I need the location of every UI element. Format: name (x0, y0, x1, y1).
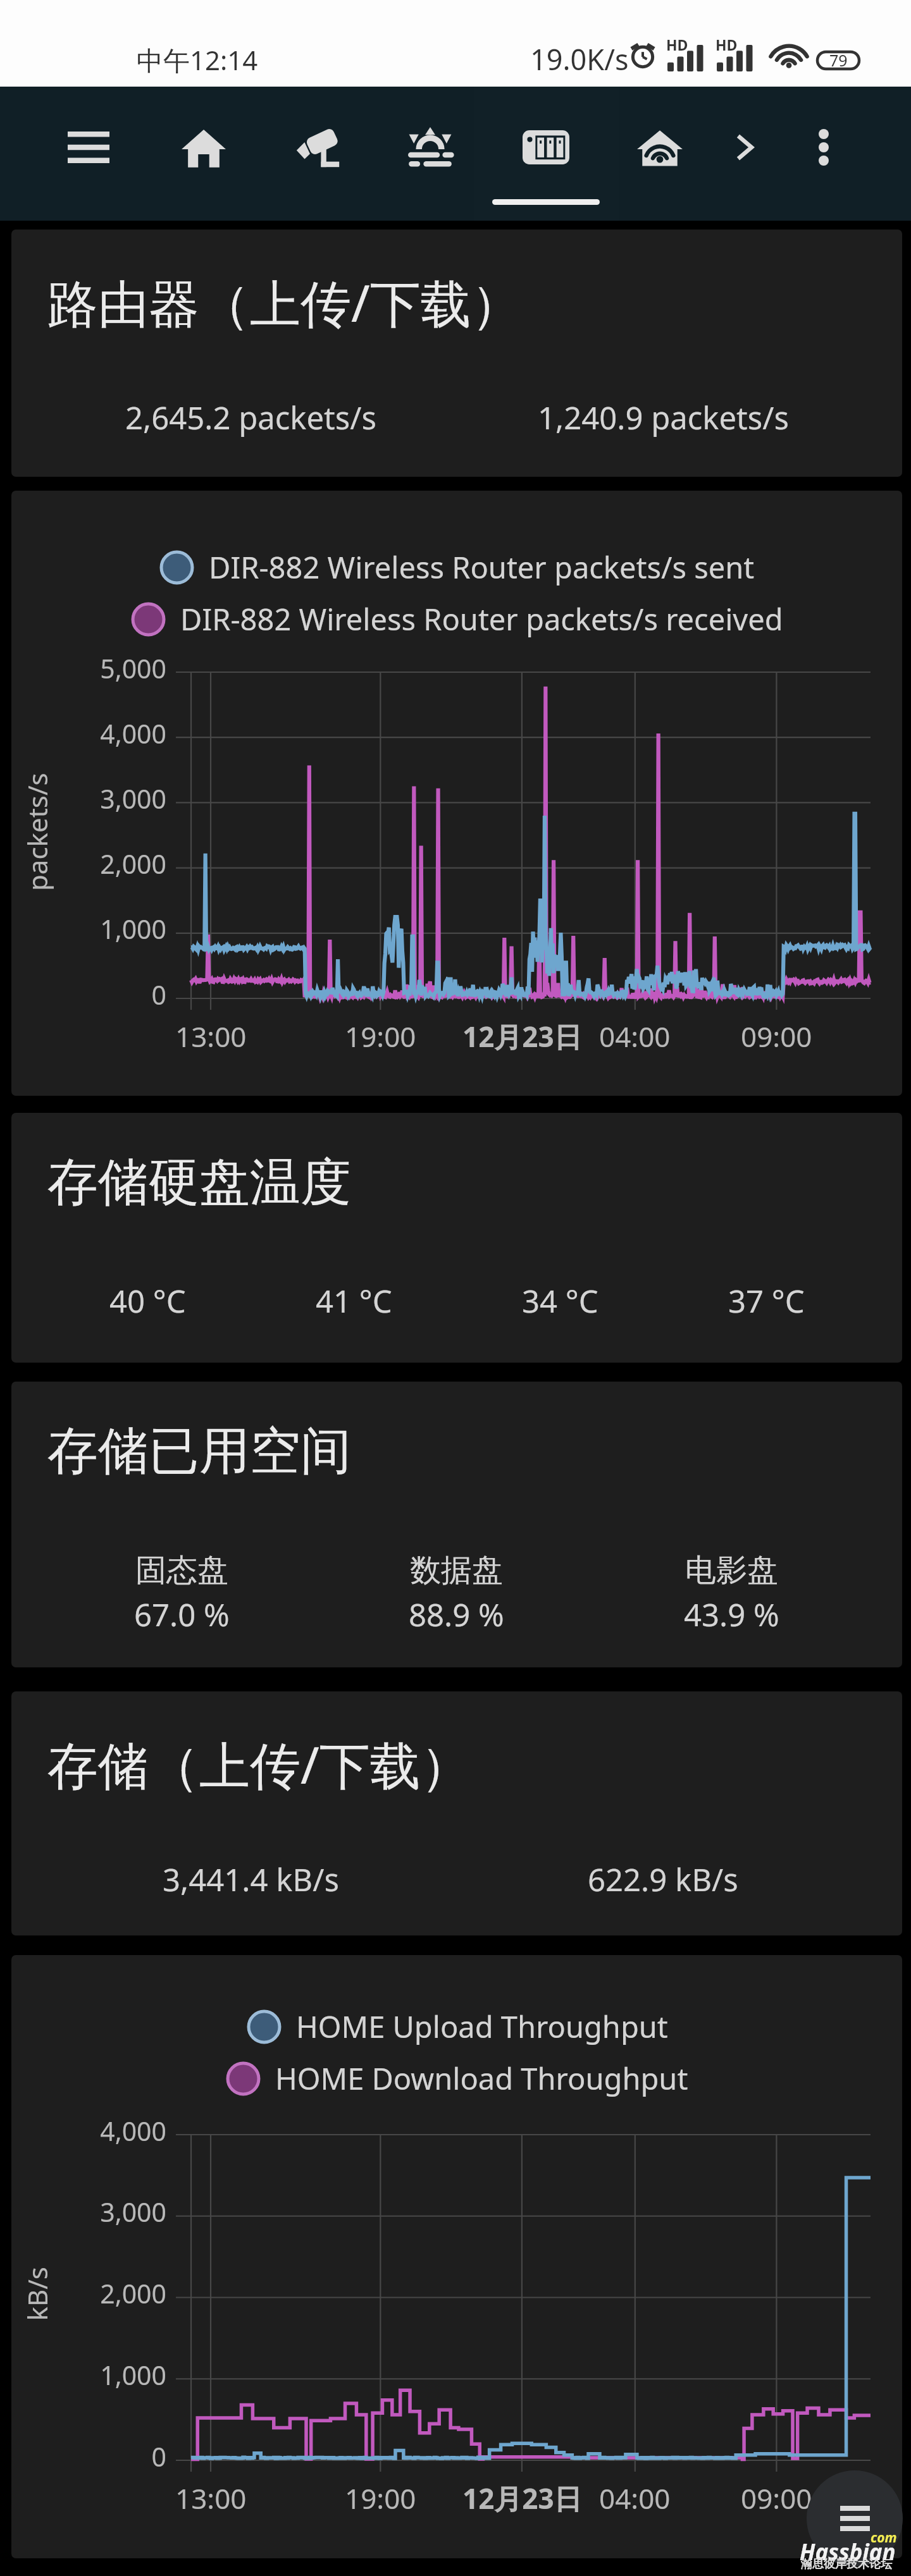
button[interactable]: 存储（上传/下载） (11, 1691, 902, 1935)
staticText: 19.0K/s (530, 40, 629, 78)
staticText: 13:00 (175, 1017, 247, 1055)
button[interactable]: Overflow menu (772, 100, 876, 195)
staticText: kB/s (19, 2266, 55, 2321)
staticText: 4,000 (100, 716, 166, 751)
button[interactable]: Network (608, 100, 712, 195)
button[interactable]: Open menu (807, 2470, 903, 2567)
button[interactable]: Menu (37, 100, 140, 195)
staticText: packets/s (19, 773, 55, 891)
staticText: 存储（上传/下载） (47, 1729, 471, 1798)
staticText: 13:00 (175, 2479, 247, 2517)
staticText: 5,000 (100, 651, 166, 686)
staticText: 1,000 (100, 2357, 166, 2393)
staticText: 88.9 % (409, 1593, 504, 1636)
staticText: HD (716, 35, 738, 54)
staticText: 09:00 (741, 2479, 812, 2517)
button[interactable]: DIR-882 Wireless Router packets/s sent (11, 491, 902, 1096)
staticText: DIR-882 Wireless Router packets/s sent (209, 547, 755, 587)
staticText: 存储已用空间 (47, 1420, 351, 1483)
staticText: 34 °C (522, 1280, 598, 1322)
staticText: 4,000 (100, 2113, 166, 2149)
button[interactable]: Server (494, 100, 598, 195)
staticText: 2,645.2 packets/s (125, 396, 376, 439)
staticText: 3,441.4 kB/s (163, 1858, 339, 1901)
staticText: 37 °C (728, 1280, 805, 1322)
staticText: 瀚思彼岸技术论坛 (801, 2557, 892, 2572)
button[interactable]: 路由器（上传/下载） (11, 230, 902, 477)
button[interactable]: HOME Upload Throughput (11, 1955, 902, 2558)
staticText: 04:00 (599, 1017, 671, 1055)
button[interactable]: 存储硬盘温度 (11, 1113, 902, 1363)
staticText: HOME Download Throughput (275, 2058, 688, 2099)
staticText: 622.9 kB/s (588, 1858, 738, 1901)
staticText: 09:00 (741, 1017, 812, 1055)
staticText: 19:00 (345, 2479, 416, 2517)
staticText: 40 °C (109, 1280, 186, 1322)
staticText: 12月23日 (462, 2479, 582, 2517)
staticText: DIR-882 Wireless Router packets/s receiv… (180, 599, 783, 639)
staticText: 1,000 (100, 911, 166, 947)
staticText: 67.0 % (134, 1593, 230, 1636)
staticText: 0 (151, 977, 166, 1012)
staticText: 19:00 (345, 1017, 416, 1055)
staticText: 存储硬盘温度 (47, 1151, 351, 1215)
button[interactable]: Home (152, 100, 256, 195)
staticText: 数据盘 (410, 1551, 503, 1590)
staticText: 3,000 (100, 2194, 166, 2229)
staticText: 2,000 (100, 2276, 166, 2311)
staticText: 电影盘 (685, 1551, 778, 1590)
staticText: 79 (829, 49, 848, 69)
staticText: HD (666, 35, 688, 54)
button[interactable]: More tabs (693, 100, 796, 195)
staticText: 41 °C (316, 1280, 392, 1322)
staticText: 3,000 (100, 781, 166, 816)
staticText: HOME Upload Throughput (296, 2006, 668, 2047)
staticText: 0 (151, 2439, 166, 2474)
button[interactable]: 存储已用空间 (11, 1382, 902, 1667)
staticText: Hassbian (800, 2537, 896, 2567)
staticText: 1,240.9 packets/s (538, 396, 789, 439)
staticText: 04:00 (599, 2479, 671, 2517)
button[interactable]: Cameras (266, 100, 370, 195)
staticText: 43.9 % (684, 1593, 779, 1636)
staticText: com (871, 2529, 897, 2547)
staticText: 路由器（上传/下载） (47, 267, 522, 336)
staticText: 中午12:14 (137, 42, 258, 78)
staticText: 2,000 (100, 846, 166, 881)
staticText: 固态盘 (135, 1551, 228, 1590)
staticText: 12月23日 (462, 1017, 582, 1055)
button[interactable]: Weather (378, 100, 482, 195)
